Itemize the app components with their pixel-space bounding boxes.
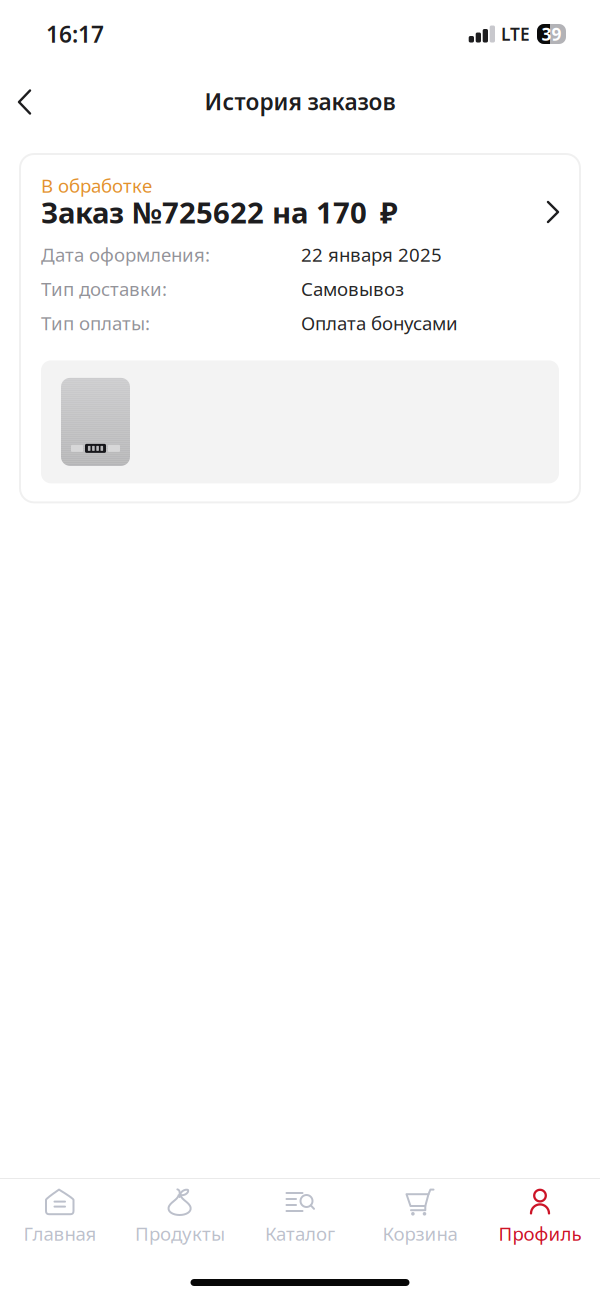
staticText: Тип доставки: — [41, 276, 167, 301]
staticText: Каталог — [265, 1221, 335, 1246]
staticText: 22 января 2025 — [301, 242, 442, 267]
staticText: Дата оформления: — [41, 242, 210, 267]
staticText: LTE — [501, 22, 530, 45]
staticText: В обработке — [41, 173, 152, 198]
staticText: Корзина — [382, 1221, 457, 1246]
staticText: История заказов — [204, 86, 395, 116]
button[interactable]: Назад — [0, 76, 47, 121]
button[interactable]: Корзина — [360, 1188, 480, 1246]
staticText: Тип оплаты: — [41, 311, 150, 335]
staticText: Профиль — [498, 1221, 581, 1246]
staticText: 16:17 — [46, 19, 104, 49]
staticText: 39 — [541, 22, 561, 45]
button[interactable]: Профиль — [480, 1188, 600, 1246]
button[interactable]: Продукты — [120, 1188, 240, 1246]
staticText: Самовывоз — [301, 276, 404, 301]
button[interactable]: Каталог — [240, 1188, 360, 1246]
staticText: Главная — [23, 1221, 96, 1246]
staticText: Оплата бонусами — [301, 311, 458, 335]
staticText: Продукты — [135, 1221, 225, 1246]
button[interactable]: Главная — [0, 1188, 120, 1246]
button[interactable]: В обработке — [20, 154, 580, 502]
staticText: Заказ №725622 на 170 ₽ — [41, 192, 398, 231]
